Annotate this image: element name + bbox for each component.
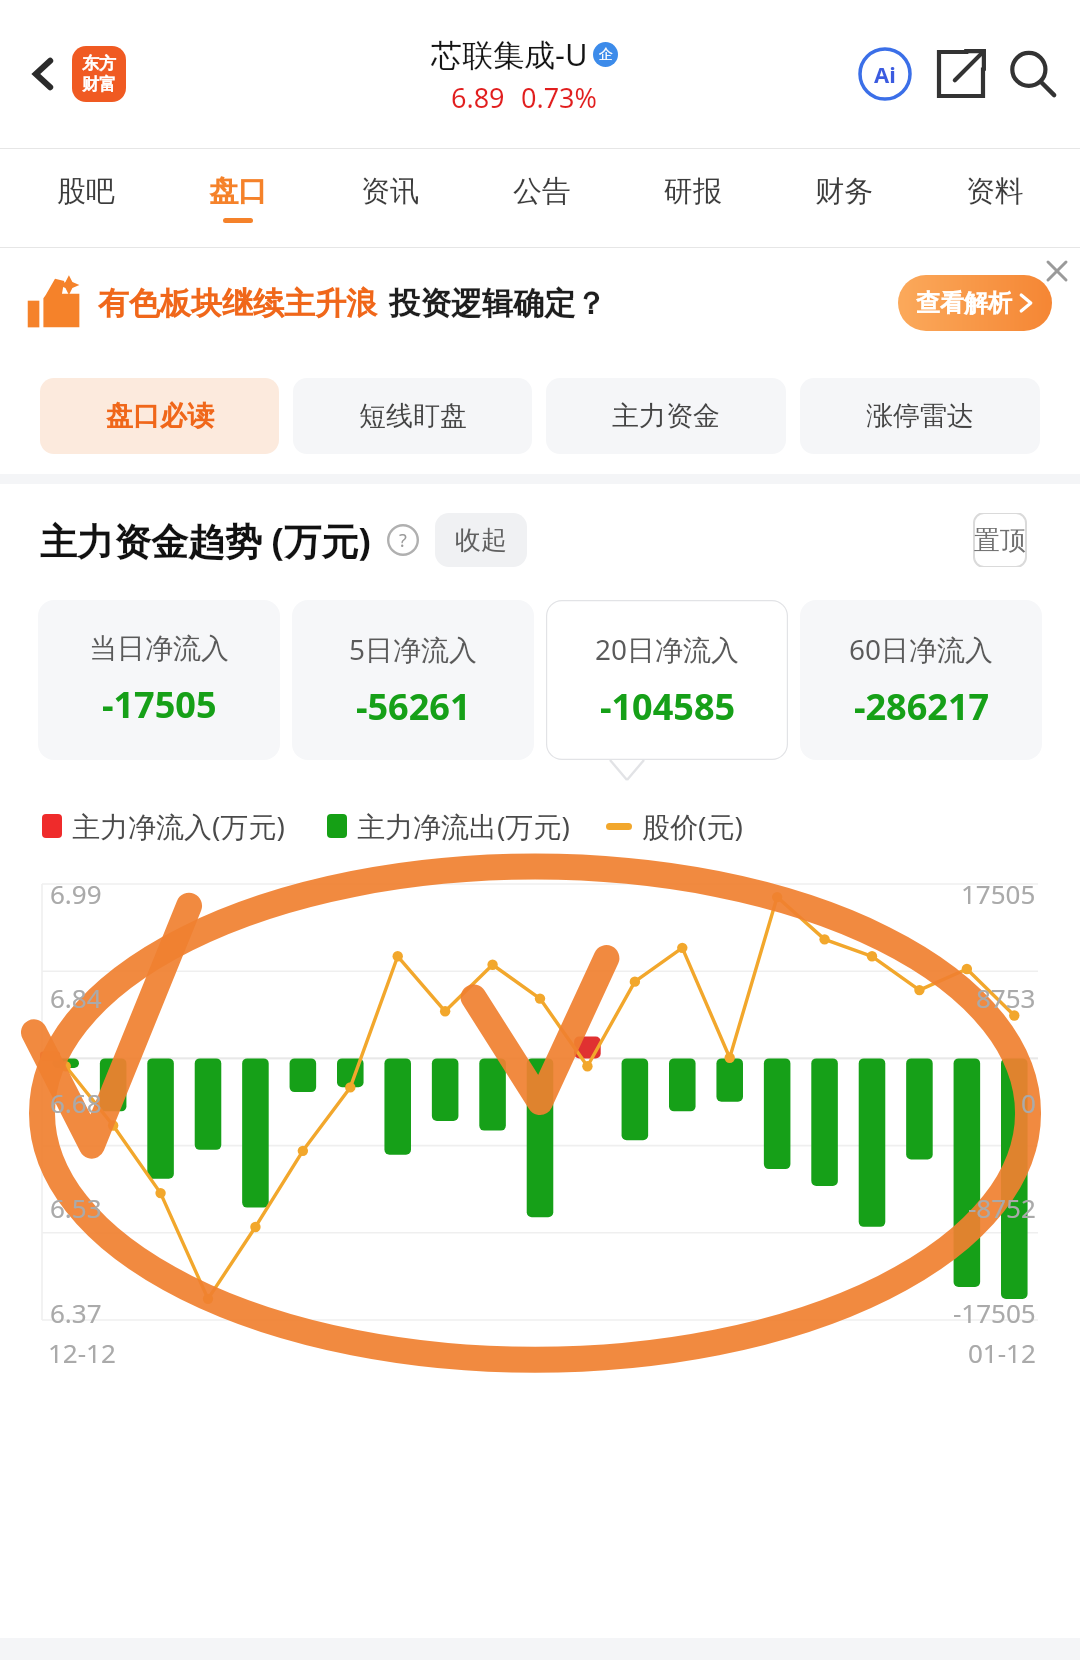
staticText: 盘口必读 bbox=[106, 399, 214, 433]
button[interactable]: 查看解析 bbox=[898, 275, 1052, 331]
staticText: 财务 bbox=[815, 173, 873, 210]
button[interactable]: 短线盯盘 bbox=[293, 378, 532, 454]
staticText: 6.99 bbox=[50, 876, 102, 911]
staticText: 投资逻辑确定？ bbox=[389, 284, 606, 323]
staticText: 短线盯盘 bbox=[359, 399, 467, 433]
staticText: 6.37 bbox=[50, 1295, 102, 1330]
staticText: 置顶 bbox=[974, 524, 1026, 557]
staticText: 17505 bbox=[961, 876, 1036, 911]
staticText: 8753 bbox=[976, 980, 1036, 1015]
staticText: 研报 bbox=[664, 173, 722, 210]
staticText: 东方 bbox=[82, 53, 116, 74]
button[interactable]: Close banner bbox=[1040, 254, 1074, 288]
staticText: 收起 bbox=[455, 524, 507, 557]
staticText: 01-12 bbox=[968, 1335, 1036, 1370]
button[interactable]: 5日净流入 bbox=[292, 600, 534, 760]
button[interactable]: 资料 bbox=[919, 149, 1070, 247]
staticText: 6.84 bbox=[50, 980, 102, 1015]
staticText: 主力净流入(万元) bbox=[72, 807, 285, 845]
staticText: -104585 bbox=[600, 682, 736, 731]
staticText: 6.89 bbox=[451, 79, 505, 116]
staticText: 股吧 bbox=[57, 173, 115, 210]
staticText: 查看解析 bbox=[916, 288, 1012, 318]
staticText: 企 bbox=[599, 46, 613, 64]
button[interactable]: 盘口 bbox=[162, 149, 314, 247]
staticText: -286217 bbox=[854, 682, 990, 731]
staticText: Ai bbox=[874, 59, 896, 89]
button[interactable]: 主力资金 bbox=[546, 378, 786, 454]
staticText: 主力净流出(万元) bbox=[357, 807, 570, 845]
staticText: -8752 bbox=[968, 1190, 1036, 1225]
button[interactable]: Help bbox=[385, 522, 421, 558]
staticText: 当日净流入 bbox=[89, 631, 229, 666]
button[interactable]: 盘口必读 bbox=[40, 378, 279, 454]
staticText: 6.53 bbox=[50, 1190, 102, 1225]
button[interactable]: 20日净流入 bbox=[546, 600, 788, 760]
button[interactable]: Search bbox=[1002, 43, 1064, 105]
button[interactable]: East Money home bbox=[72, 46, 126, 102]
button[interactable]: 研报 bbox=[617, 149, 768, 247]
staticText: 财富 bbox=[82, 74, 116, 95]
staticText: 资料 bbox=[966, 173, 1024, 210]
staticText: 有色板块继续主升浪 bbox=[98, 284, 377, 323]
staticText: 5日净流入 bbox=[349, 630, 478, 668]
staticText: 主力资金 bbox=[612, 399, 720, 433]
button[interactable]: 60日净流入 bbox=[800, 600, 1042, 760]
button[interactable]: Share bbox=[930, 43, 992, 105]
staticText: 盘口 bbox=[209, 173, 267, 210]
staticText: -17505 bbox=[102, 680, 217, 729]
staticText: -17505 bbox=[953, 1295, 1036, 1330]
staticText: -56261 bbox=[356, 682, 471, 731]
staticText: 60日净流入 bbox=[849, 630, 994, 668]
button[interactable]: Back bbox=[10, 44, 70, 104]
staticText: 主力资金趋势 (万元) bbox=[40, 515, 371, 566]
staticText: ? bbox=[399, 528, 407, 553]
button[interactable]: 资讯 bbox=[314, 149, 466, 247]
button[interactable]: 涨停雷达 bbox=[800, 378, 1040, 454]
staticText: 公告 bbox=[513, 173, 571, 210]
button[interactable]: 当日净流入 bbox=[38, 600, 280, 760]
button[interactable]: 收起 bbox=[435, 513, 527, 567]
button[interactable]: 公告 bbox=[466, 149, 617, 247]
staticText: 涨停雷达 bbox=[866, 399, 974, 433]
button[interactable]: AI assistant bbox=[854, 43, 916, 105]
staticText: 芯联集成-U bbox=[431, 33, 588, 75]
button[interactable]: 财务 bbox=[768, 149, 919, 247]
button[interactable]: 股吧 bbox=[10, 149, 162, 247]
staticText: 0.73% bbox=[521, 79, 598, 116]
staticText: 20日净流入 bbox=[595, 630, 740, 668]
button[interactable]: 置顶 bbox=[956, 513, 1044, 567]
staticText: 12-12 bbox=[48, 1335, 116, 1370]
staticText: 0 bbox=[1021, 1085, 1036, 1120]
staticText: 资讯 bbox=[361, 173, 419, 210]
staticText: 6.68 bbox=[50, 1085, 102, 1120]
staticText: 股价(元) bbox=[642, 807, 743, 845]
